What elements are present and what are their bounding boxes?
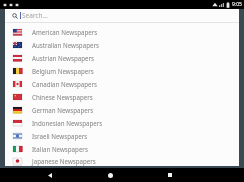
button[interactable]: Japanese Newspapers (5, 155, 239, 166)
button[interactable]: Home (103, 168, 117, 182)
staticText: Japanese Newspapers (32, 157, 96, 165)
staticText: Indonesian Newspapers (32, 119, 103, 127)
staticText: Chinese Newspapers (32, 93, 93, 101)
button[interactable]: American Newspapers (5, 25, 239, 38)
button[interactable]: Back (43, 168, 57, 182)
other: Search (12, 13, 18, 19)
staticText: Belgium Newspapers (32, 67, 94, 75)
button[interactable]: Search (5, 9, 239, 22)
button[interactable]: Indonesian Newspapers (5, 116, 239, 129)
button[interactable]: Recent apps (163, 168, 177, 182)
button[interactable]: Chinese Newspapers (5, 90, 239, 103)
staticText: Austrian Newspapers (32, 54, 95, 62)
staticText: Australian Newspapers (32, 41, 99, 49)
button[interactable]: German Newspapers (5, 103, 239, 116)
staticText: 9:05 (232, 1, 242, 8)
button[interactable]: Israeli Newspapers (5, 129, 239, 142)
staticText: Canadian Newspapers (32, 80, 97, 88)
button[interactable]: Canadian Newspapers (5, 77, 239, 90)
staticText: Italian Newspapers (32, 145, 88, 153)
button[interactable]: Australian Newspapers (5, 38, 239, 51)
button[interactable]: Italian Newspapers (5, 142, 239, 155)
button[interactable]: Austrian Newspapers (5, 51, 239, 64)
staticText: German Newspapers (32, 106, 94, 114)
staticText: Search... (22, 11, 48, 20)
button[interactable]: Belgium Newspapers (5, 64, 239, 77)
staticText: American Newspapers (32, 28, 98, 36)
staticText: Israeli Newspapers (32, 132, 88, 140)
